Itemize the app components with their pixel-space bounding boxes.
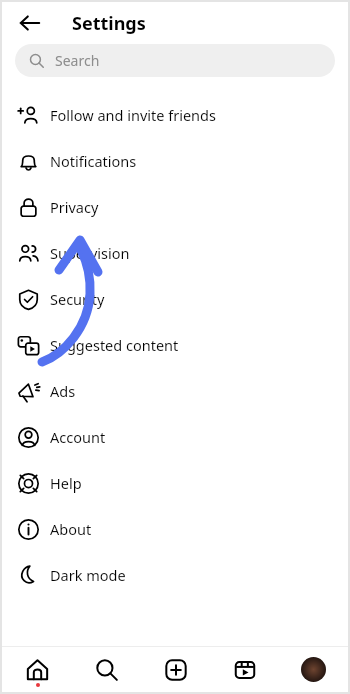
staticText: Privacy: [50, 197, 99, 217]
button[interactable]: Back: [12, 5, 48, 41]
button[interactable]: Suggested content: [2, 322, 348, 368]
staticText: Suggested content: [50, 335, 179, 355]
button[interactable]: Home: [2, 647, 72, 692]
staticText: Help: [50, 473, 82, 493]
button[interactable]: Supervision: [2, 230, 348, 276]
button[interactable]: Dark mode: [2, 552, 348, 598]
button[interactable]: Security: [2, 276, 348, 322]
staticText: Search: [55, 51, 100, 70]
staticText: Security: [50, 289, 105, 309]
button[interactable]: Reels: [210, 647, 279, 692]
button[interactable]: Follow and invite friends: [2, 92, 348, 138]
button[interactable]: Privacy: [2, 184, 348, 230]
staticText: Account: [50, 427, 106, 447]
button[interactable]: Help: [2, 460, 348, 506]
staticText: Supervision: [50, 243, 130, 263]
staticText: Settings: [72, 11, 146, 36]
staticText: About: [50, 519, 92, 539]
staticText: Follow and invite friends: [50, 105, 216, 125]
button[interactable]: Create: [141, 647, 210, 692]
button[interactable]: Profile: [279, 647, 348, 692]
staticText: Ads: [50, 381, 76, 401]
staticText: Dark mode: [50, 565, 126, 585]
button[interactable]: Account: [2, 414, 348, 460]
button[interactable]: About: [2, 506, 348, 552]
staticText: Notifications: [50, 151, 137, 171]
button[interactable]: Search: [15, 44, 335, 77]
button[interactable]: Ads: [2, 368, 348, 414]
button[interactable]: Search: [72, 647, 141, 692]
button[interactable]: Notifications: [2, 138, 348, 184]
